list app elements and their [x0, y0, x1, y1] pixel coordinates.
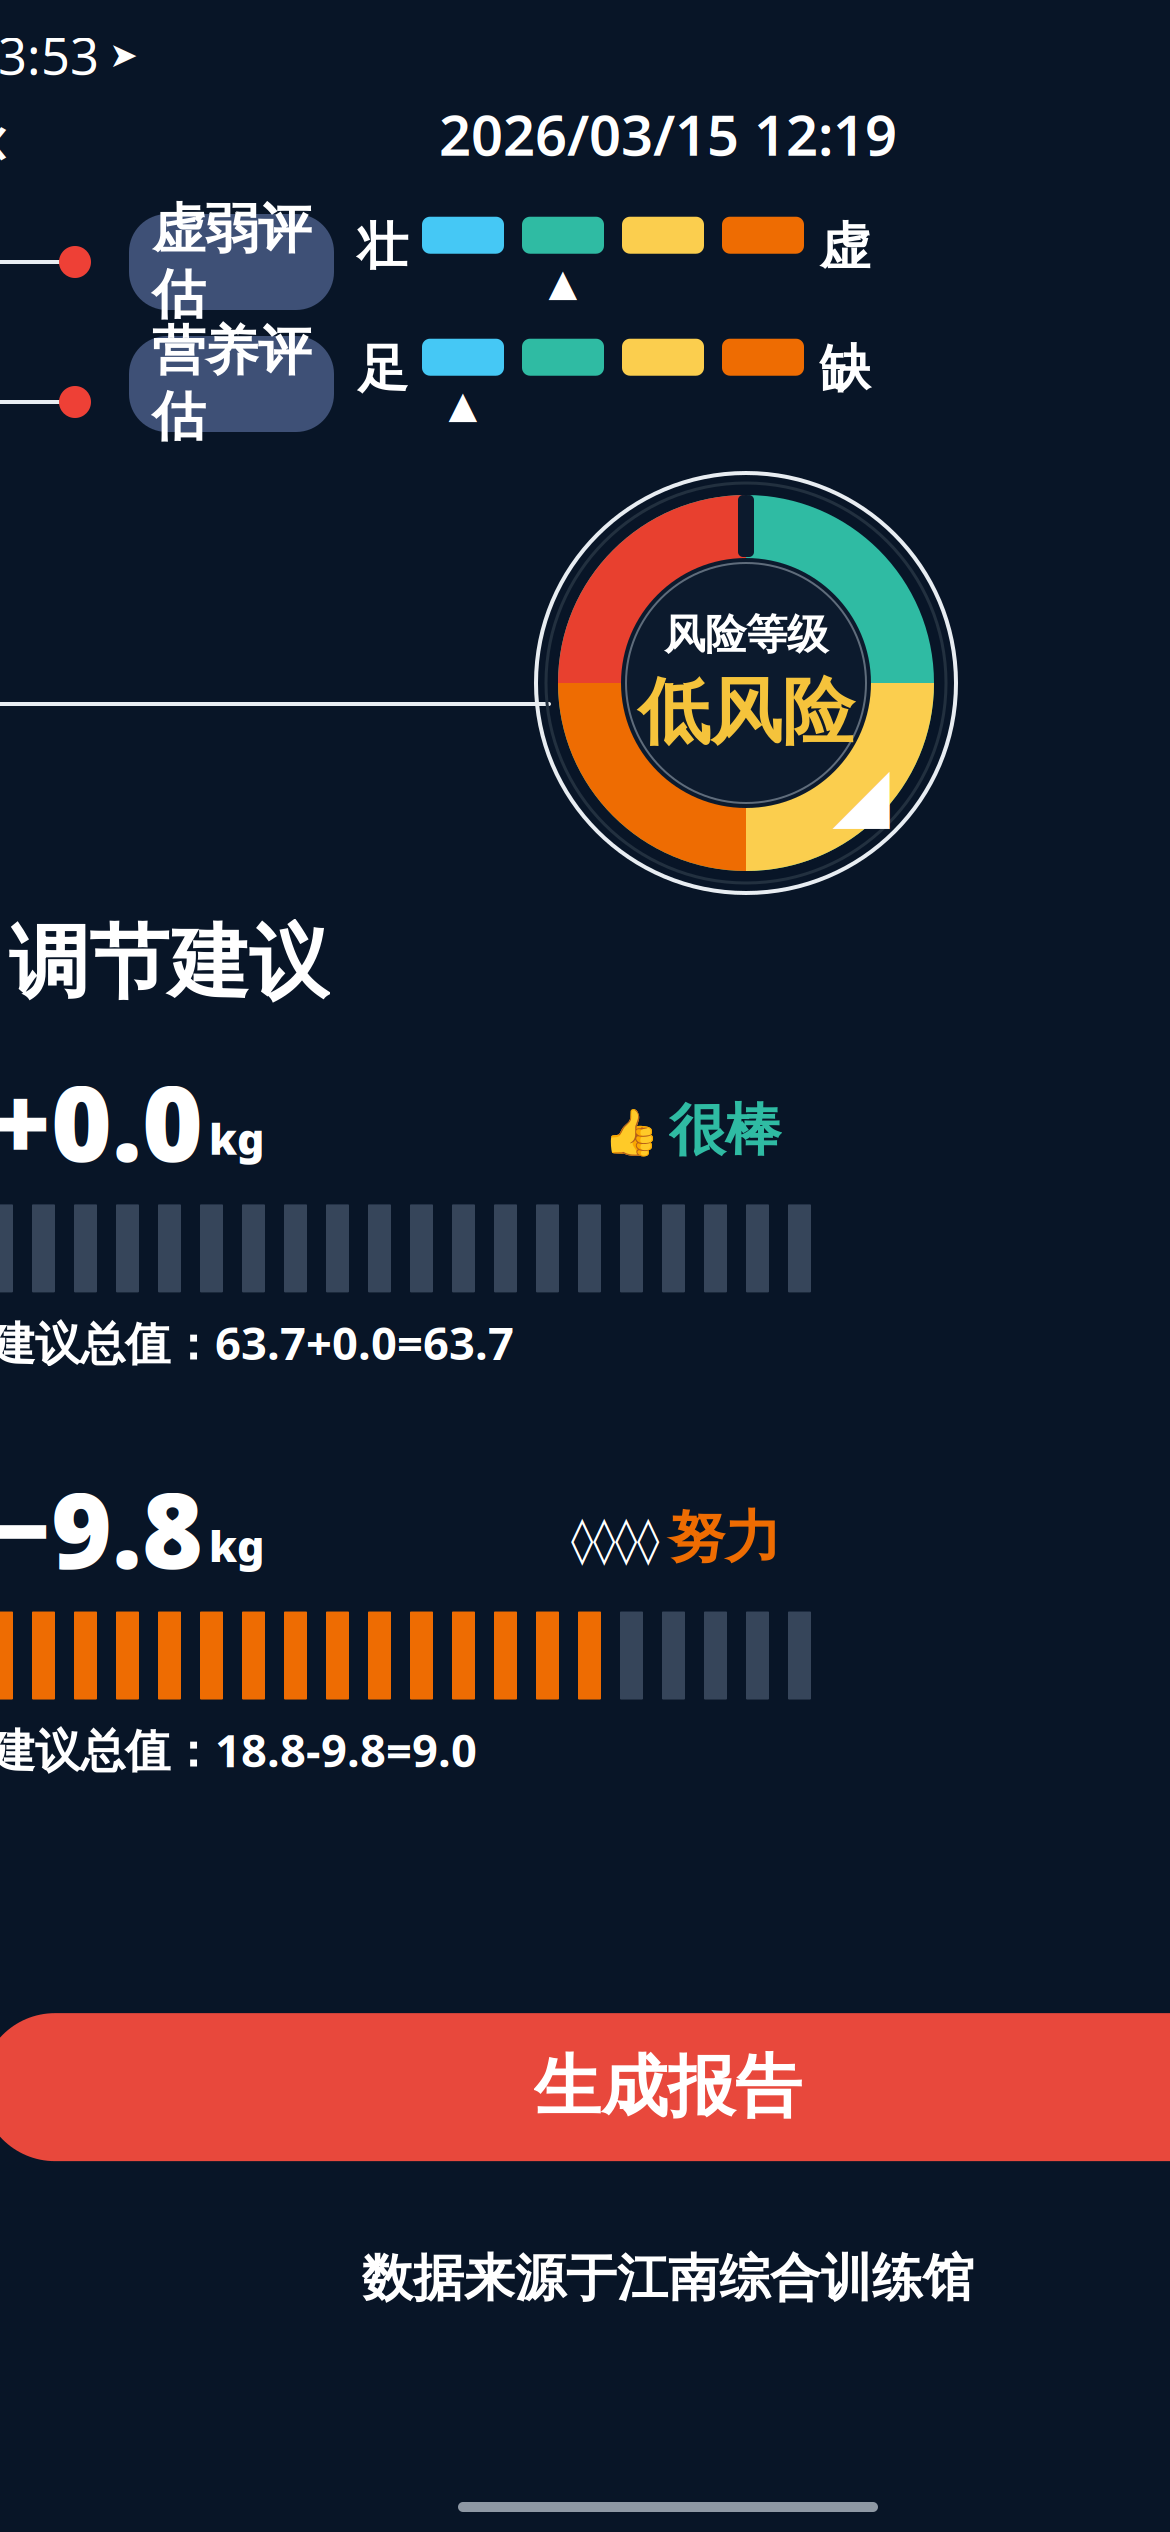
staticText: kg [209, 1517, 264, 1574]
staticText: 努力 [669, 1503, 781, 1572]
staticText: ◢ [832, 752, 889, 836]
button[interactable]: 营养评估 [129, 336, 334, 432]
staticText: +0.0 [0, 1052, 203, 1190]
staticText: 缺 [819, 338, 870, 400]
staticText: 壮 [357, 216, 408, 278]
staticText: 很棒 [669, 1096, 781, 1165]
staticText: 建议总值：63.7+0.0=63.7 [0, 1312, 514, 1373]
staticText: ▲ [448, 383, 477, 426]
staticText: 风险等级 [664, 609, 828, 660]
staticText: ‹ [0, 81, 9, 187]
staticText: ➤ [109, 35, 138, 75]
staticText: 虚弱评估 [152, 196, 311, 327]
staticText: −9.8 [0, 1459, 203, 1597]
staticText: 低风险 [638, 668, 854, 757]
staticText: 2026/03/15 12:19 [439, 97, 897, 171]
staticText: 👍 [603, 1106, 659, 1158]
staticText: ▲ [548, 261, 577, 304]
staticText: ◊◊◊◊ [571, 1514, 659, 1565]
staticText: 建议总值：18.8-9.8=9.0 [0, 1719, 477, 1780]
staticText: 营养评估 [152, 318, 311, 449]
button[interactable]: 生成报告 [0, 2013, 1170, 2161]
staticText: 数据来源于江南综合训练馆 [362, 2247, 974, 2309]
button[interactable]: Back [0, 88, 45, 180]
staticText: 生成报告 [534, 2046, 802, 2128]
staticText: 调节建议 [9, 914, 329, 1012]
staticText: 足 [357, 338, 408, 400]
staticText: 虚 [819, 216, 870, 278]
staticText: kg [209, 1110, 264, 1167]
staticText: 13:53 [0, 21, 99, 89]
button[interactable]: 虚弱评估 [129, 214, 334, 310]
